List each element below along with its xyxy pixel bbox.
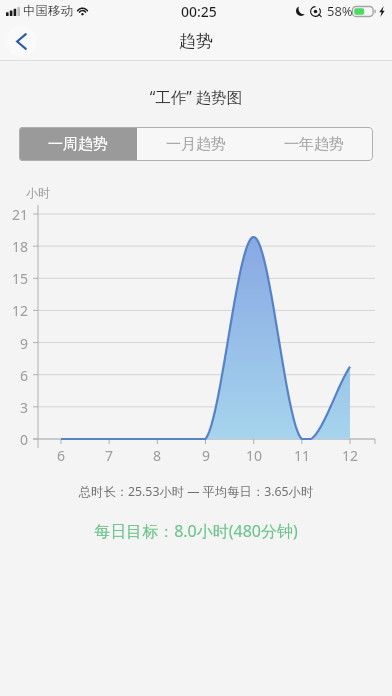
- staticText: 58%: [327, 2, 353, 20]
- staticText: 18: [12, 237, 29, 255]
- staticText: 9: [20, 334, 29, 352]
- staticText: 趋势: [179, 31, 213, 52]
- staticText: 一月趋势: [166, 135, 226, 154]
- staticText: 3: [20, 398, 29, 416]
- staticText: 中国移动: [23, 3, 73, 19]
- staticText: 0: [20, 430, 29, 448]
- staticText: 7: [105, 446, 114, 464]
- staticText: 12: [12, 301, 29, 319]
- staticText: “工作” 趋势图: [0, 86, 392, 107]
- staticText: 10: [246, 446, 263, 464]
- staticText: 6: [20, 366, 29, 384]
- staticText: 15: [12, 269, 29, 287]
- staticText: 11: [294, 446, 311, 464]
- staticText: 一周趋势: [48, 135, 108, 154]
- staticText: 6: [57, 446, 66, 464]
- staticText: 总时长：25.53小时 — 平均每日：3.65小时: [0, 483, 392, 500]
- button[interactable]: 一月趋势: [137, 127, 255, 161]
- staticText: 小时: [26, 185, 50, 200]
- staticText: 21: [12, 205, 29, 223]
- button[interactable]: 一周趋势: [19, 127, 137, 161]
- staticText: 每日目标：8.0小时(480分钟): [0, 520, 392, 542]
- button[interactable]: Back: [6, 26, 37, 57]
- staticText: 00:25: [181, 2, 217, 21]
- staticText: 9: [202, 446, 211, 464]
- button[interactable]: 一年趋势: [255, 127, 373, 161]
- staticText: 一年趋势: [284, 135, 344, 154]
- staticText: 12: [342, 446, 359, 464]
- staticText: 8: [153, 446, 162, 464]
